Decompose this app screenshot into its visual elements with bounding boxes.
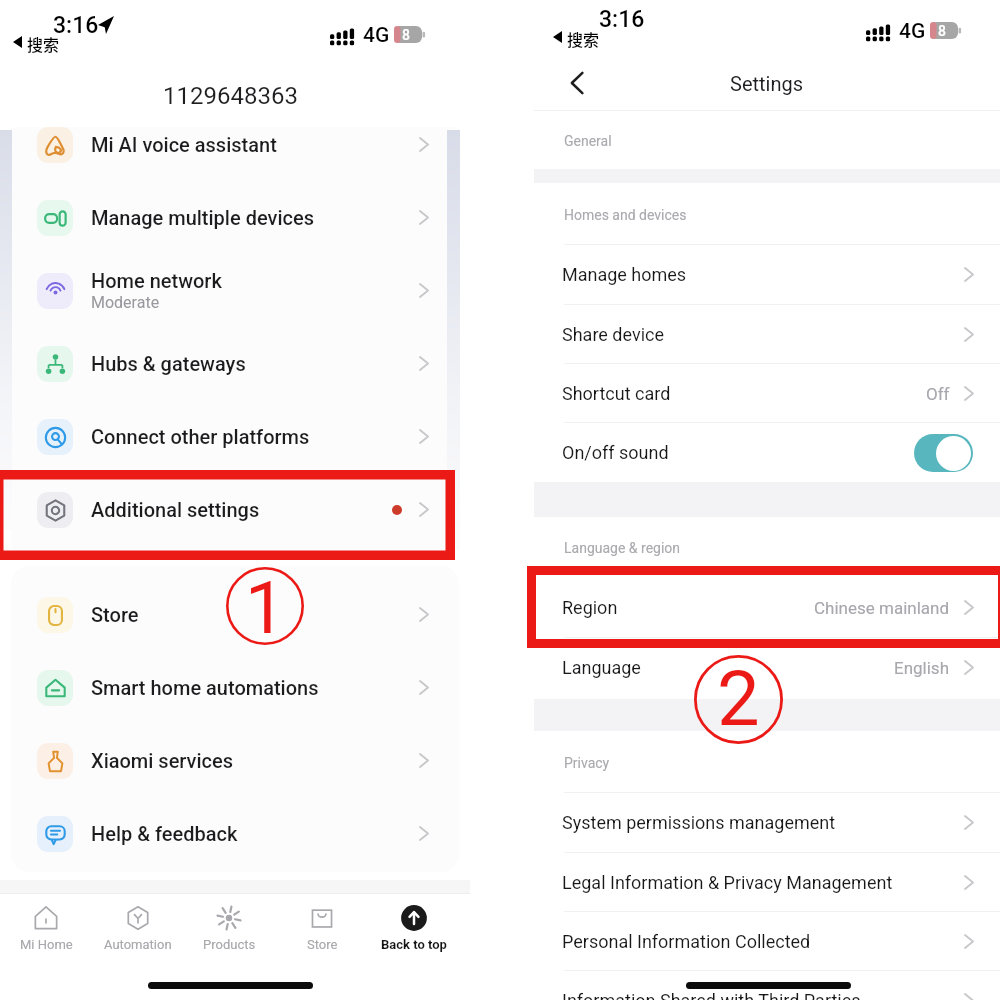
button[interactable]: Region <box>500 578 1000 637</box>
staticText: Shortcut card <box>562 383 671 404</box>
staticText: Chinese mainland <box>814 598 950 618</box>
staticText: Off <box>926 384 950 404</box>
staticText: Language <box>562 657 641 678</box>
staticText: System permissions management <box>562 812 836 833</box>
staticText: 搜索 <box>567 27 600 50</box>
button[interactable]: Help & feedback <box>11 797 459 870</box>
staticText: Store <box>91 603 139 626</box>
staticText: Xiaomi services <box>91 749 234 772</box>
staticText: 8 <box>938 23 946 39</box>
staticText: Mi Home <box>20 937 73 952</box>
staticText: Automation <box>104 937 172 952</box>
button[interactable]: Legal Information & Privacy Management <box>500 853 1000 912</box>
button[interactable]: Manage multiple devices <box>11 181 459 254</box>
staticText: 2 <box>717 654 760 743</box>
button[interactable]: Personal Information Collected <box>500 912 1000 971</box>
staticText: Region <box>562 597 618 618</box>
staticText: Information Shared with Third Parties <box>562 990 861 1000</box>
staticText: Mi AI voice assistant <box>91 133 277 156</box>
staticText: Legal Information & Privacy Management <box>562 872 893 893</box>
button[interactable]: Store <box>11 578 459 651</box>
staticText: 3:16 <box>599 6 645 33</box>
button[interactable]: Products <box>183 893 275 1000</box>
staticText: Home network <box>91 269 222 292</box>
staticText: Personal Information Collected <box>562 931 811 952</box>
staticText: Smart home automations <box>91 676 319 699</box>
staticText: Store <box>307 937 338 952</box>
staticText: Moderate <box>91 293 160 312</box>
button[interactable]: Shortcut card <box>500 364 1000 423</box>
button[interactable]: On/off sound <box>500 423 1000 482</box>
staticText: Hubs & gateways <box>91 352 246 375</box>
staticText: General <box>564 133 612 149</box>
button[interactable]: Language <box>500 638 1000 697</box>
button[interactable]: Xiaomi services <box>11 724 459 797</box>
button[interactable]: On/off sound toggle <box>914 434 973 472</box>
staticText: Products <box>203 937 256 952</box>
staticText: 8 <box>402 27 410 43</box>
staticText: Help & feedback <box>91 822 238 845</box>
staticText: Language & region <box>564 540 681 556</box>
staticText: Back to top <box>381 937 447 952</box>
button[interactable]: Information Shared with Third Parties <box>500 971 1000 1000</box>
staticText: Settings <box>730 72 804 95</box>
button[interactable]: Home network <box>11 254 459 327</box>
button[interactable]: Share device <box>500 305 1000 364</box>
staticText: Additional settings <box>91 498 260 521</box>
staticText: English <box>894 658 950 678</box>
staticText: Privacy <box>564 755 610 771</box>
button[interactable]: Connect other platforms <box>11 400 459 473</box>
staticText: Connect other platforms <box>91 425 310 448</box>
button[interactable]: System permissions management <box>500 793 1000 852</box>
staticText: 4G <box>363 23 390 48</box>
button[interactable]: Mi AI voice assistant <box>11 127 459 181</box>
staticText: 3:16 <box>53 12 99 39</box>
button[interactable]: Back to top <box>368 893 460 1000</box>
staticText: 1129648363 <box>163 82 298 110</box>
button[interactable]: Back <box>558 63 598 103</box>
staticText: 4G <box>899 19 926 44</box>
staticText: Share device <box>562 324 664 345</box>
staticText: Manage homes <box>562 264 687 285</box>
staticText: 1 <box>245 566 286 644</box>
staticText: 搜索 <box>27 32 60 55</box>
button[interactable]: Additional settings <box>11 473 459 546</box>
button[interactable]: Hubs & gateways <box>11 327 459 400</box>
button[interactable]: Smart home automations <box>11 651 459 724</box>
staticText: Homes and devices <box>564 207 687 223</box>
button[interactable]: Mi Home <box>0 893 92 1000</box>
staticText: Manage multiple devices <box>91 206 314 229</box>
button[interactable]: Store <box>276 893 368 1000</box>
staticText: On/off sound <box>562 442 669 463</box>
button[interactable]: Manage homes <box>500 245 1000 304</box>
button[interactable]: Automation <box>92 893 184 1000</box>
